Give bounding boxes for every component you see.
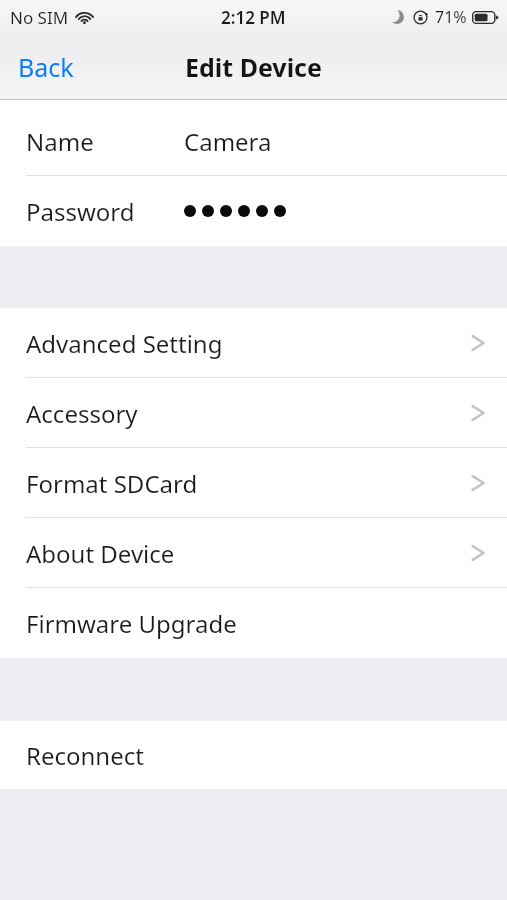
staticText: Firmware Upgrade <box>26 607 237 640</box>
button[interactable]: About Device <box>0 518 507 588</box>
button[interactable]: Accessory <box>0 378 507 448</box>
staticText: About Device <box>26 537 175 570</box>
staticText: 2:12 PM <box>221 6 286 29</box>
button[interactable]: Firmware Upgrade <box>0 588 507 658</box>
staticText: Password <box>26 195 135 228</box>
staticText: Advanced Setting <box>26 327 223 360</box>
other: Open About Device <box>471 541 485 565</box>
button[interactable]: Reconnect <box>0 721 507 789</box>
staticText: Format SDCard <box>26 467 198 500</box>
other: Open Advanced Setting <box>471 331 485 355</box>
staticText: Back <box>18 50 74 84</box>
button[interactable]: Password <box>0 176 507 246</box>
button[interactable]: Format SDCard <box>0 448 507 518</box>
staticText: No SIM <box>10 6 69 29</box>
button[interactable]: Advanced Setting <box>0 308 507 378</box>
staticText: Edit Device <box>185 50 322 84</box>
button[interactable]: Back <box>0 40 92 94</box>
staticText: Reconnect <box>26 739 144 772</box>
other: Open Accessory <box>471 401 485 425</box>
staticText: Name <box>26 125 94 158</box>
other: Open Format SDCard <box>471 471 485 495</box>
staticText: Camera <box>184 125 272 158</box>
staticText: 71% <box>435 6 467 28</box>
button[interactable]: Name <box>0 106 507 176</box>
staticText: Accessory <box>26 397 138 430</box>
